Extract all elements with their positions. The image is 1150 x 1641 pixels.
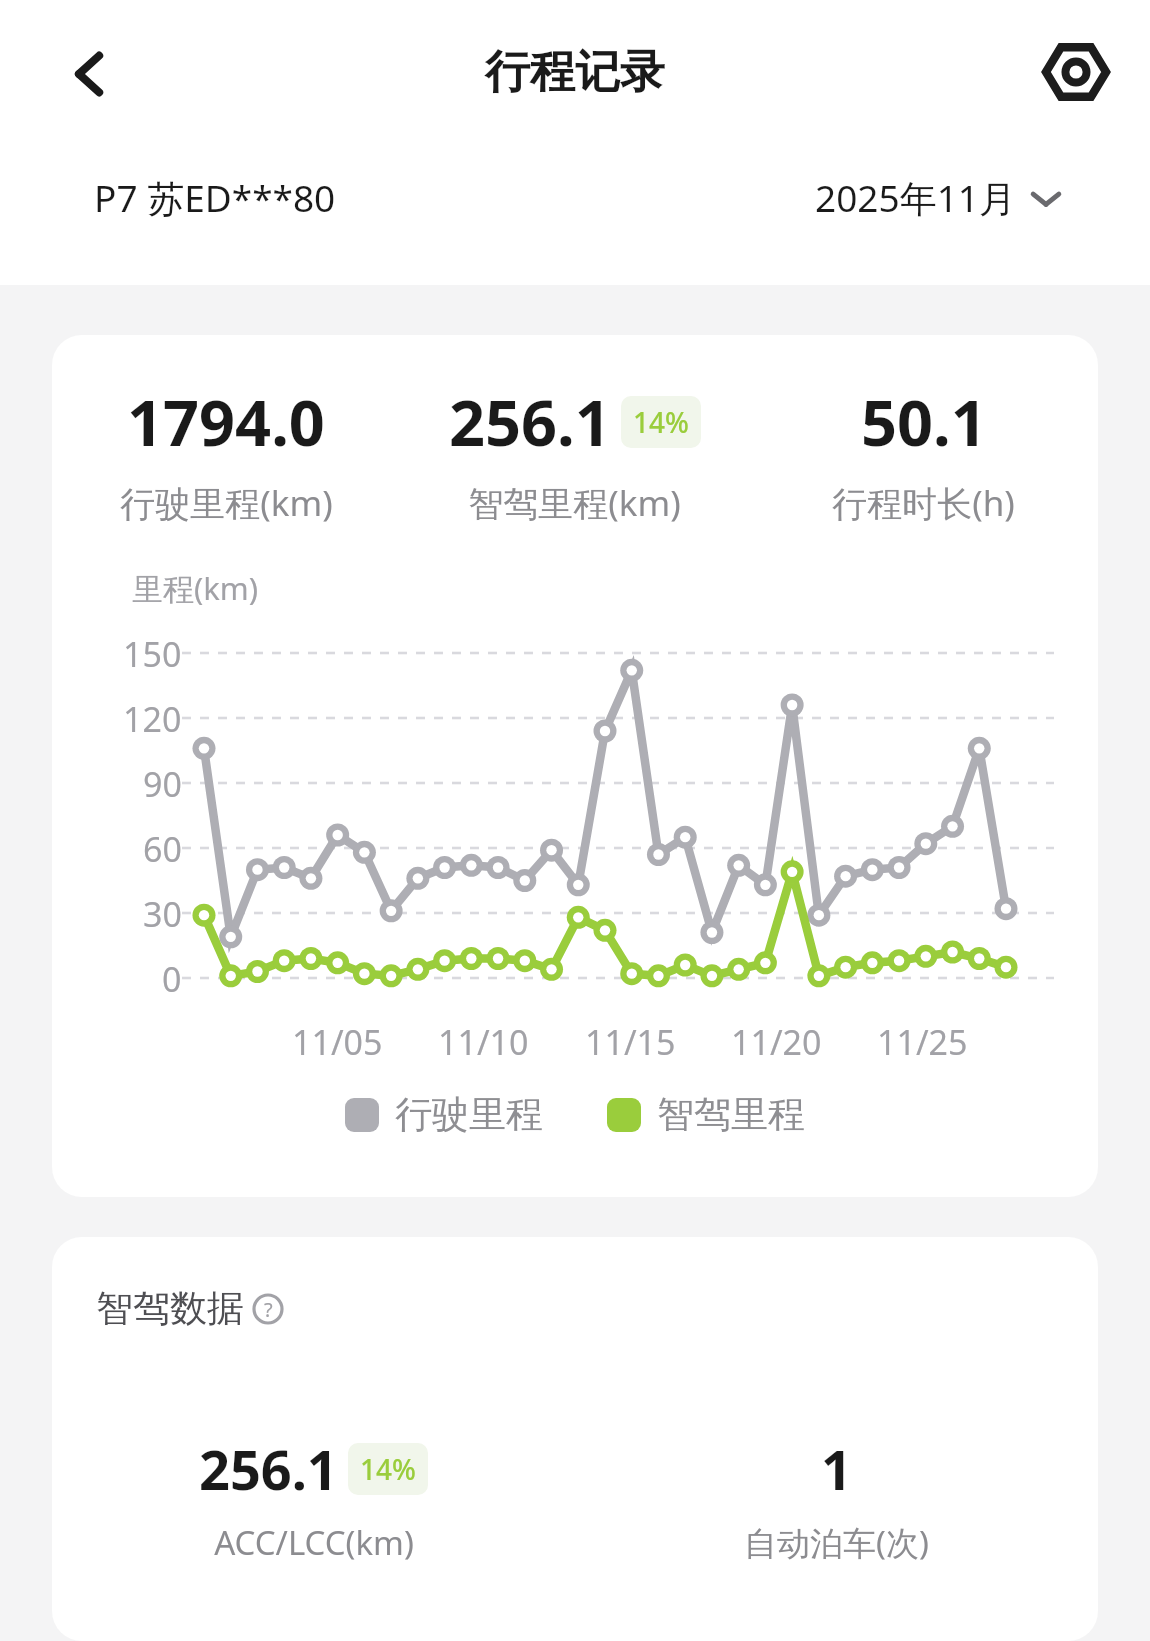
staticText: 1794.0 [127,379,325,465]
staticText: 11/10 [438,1019,529,1065]
button[interactable]: 2025年11月 [815,172,1062,223]
button[interactable]: Settings [1030,26,1122,118]
staticText: 11/20 [731,1019,822,1065]
button[interactable]: 智驾数据 [52,1237,1098,1641]
staticText: 智驾里程(km) [468,479,681,527]
staticText: 90 [143,761,182,807]
staticText: 行驶里程(km) [120,479,333,527]
staticText: 智驾里程 [657,1091,805,1138]
staticText: 自动泊车(次) [744,1520,929,1565]
staticText: 256.1 [449,379,611,465]
button[interactable]: 智驾数据 [96,1285,284,1332]
staticText: 14% [633,403,689,441]
staticText: ? [264,1296,273,1323]
staticText: 11/05 [292,1019,383,1065]
staticText: 智驾数据 [96,1285,244,1332]
button[interactable]: 1794.0 [52,335,1098,1197]
button[interactable]: Back [42,26,138,122]
staticText: 11/25 [877,1019,968,1065]
staticText: ACC/LCC(km) [214,1520,414,1565]
staticText: 0 [162,956,182,1002]
staticText: 行驶里程 [395,1091,543,1138]
staticText: 11/15 [585,1019,676,1065]
staticText: 150 [123,631,182,677]
button[interactable]: 智驾里程 [607,1091,805,1138]
staticText: 120 [123,696,182,742]
button[interactable]: 行驶里程 [345,1091,543,1138]
staticText: 50.1 [861,379,987,465]
staticText: 2025年11月 [815,172,1016,223]
other: Info [252,1293,284,1325]
staticText: 1 [821,1432,852,1506]
staticText: 14% [360,1450,416,1488]
staticText: 行程记录 [485,44,665,101]
staticText: 行程时长(h) [832,479,1015,527]
staticText: 256.1 [199,1432,338,1506]
staticText: 30 [143,891,182,937]
staticText: 里程(km) [132,567,259,609]
staticText: P7 苏ED***80 [94,172,336,223]
staticText: 60 [143,826,182,872]
